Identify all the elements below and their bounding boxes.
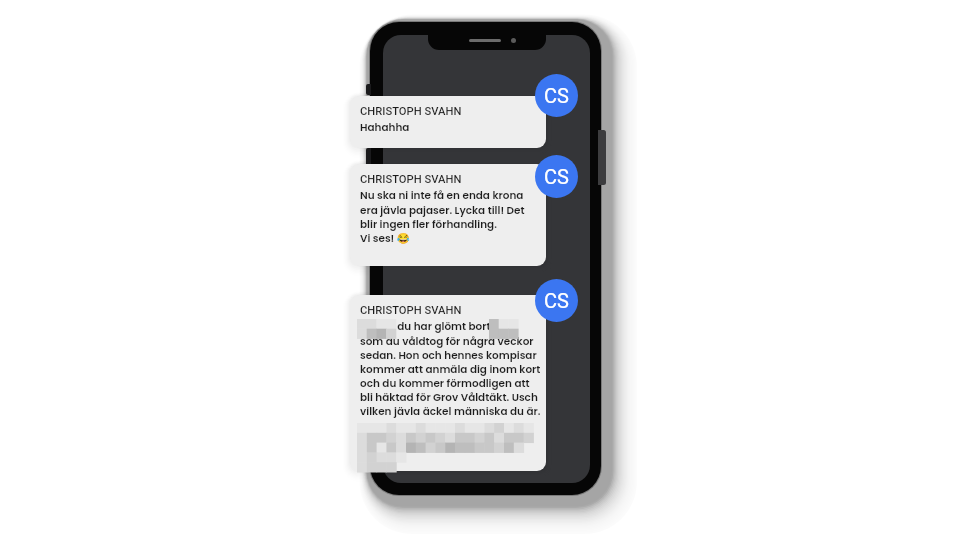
button[interactable]: CHRISTOPH SVAHN	[350, 295, 546, 471]
button[interactable]: CHRISTOPH SVAHN	[350, 96, 546, 148]
staticText: Nu ska ni inte få en enda krona era jävl…	[360, 188, 525, 246]
staticText: CHRISTOPH SVAHN	[360, 304, 462, 317]
button[interactable]: Christoph Svahn avatar	[535, 155, 578, 198]
staticText: CS	[544, 289, 569, 312]
staticText: du har glömt bort som du våldtog för någ…	[360, 319, 541, 418]
staticText: CS	[544, 165, 569, 188]
staticText: Hahahha	[360, 120, 410, 135]
staticText: CS	[544, 84, 569, 107]
button[interactable]: Christoph Svahn avatar	[535, 74, 578, 117]
button[interactable]: Christoph Svahn avatar	[535, 279, 578, 322]
staticText: CHRISTOPH SVAHN	[360, 173, 462, 186]
staticText: CHRISTOPH SVAHN	[360, 105, 462, 118]
button[interactable]: CHRISTOPH SVAHN	[350, 164, 546, 266]
